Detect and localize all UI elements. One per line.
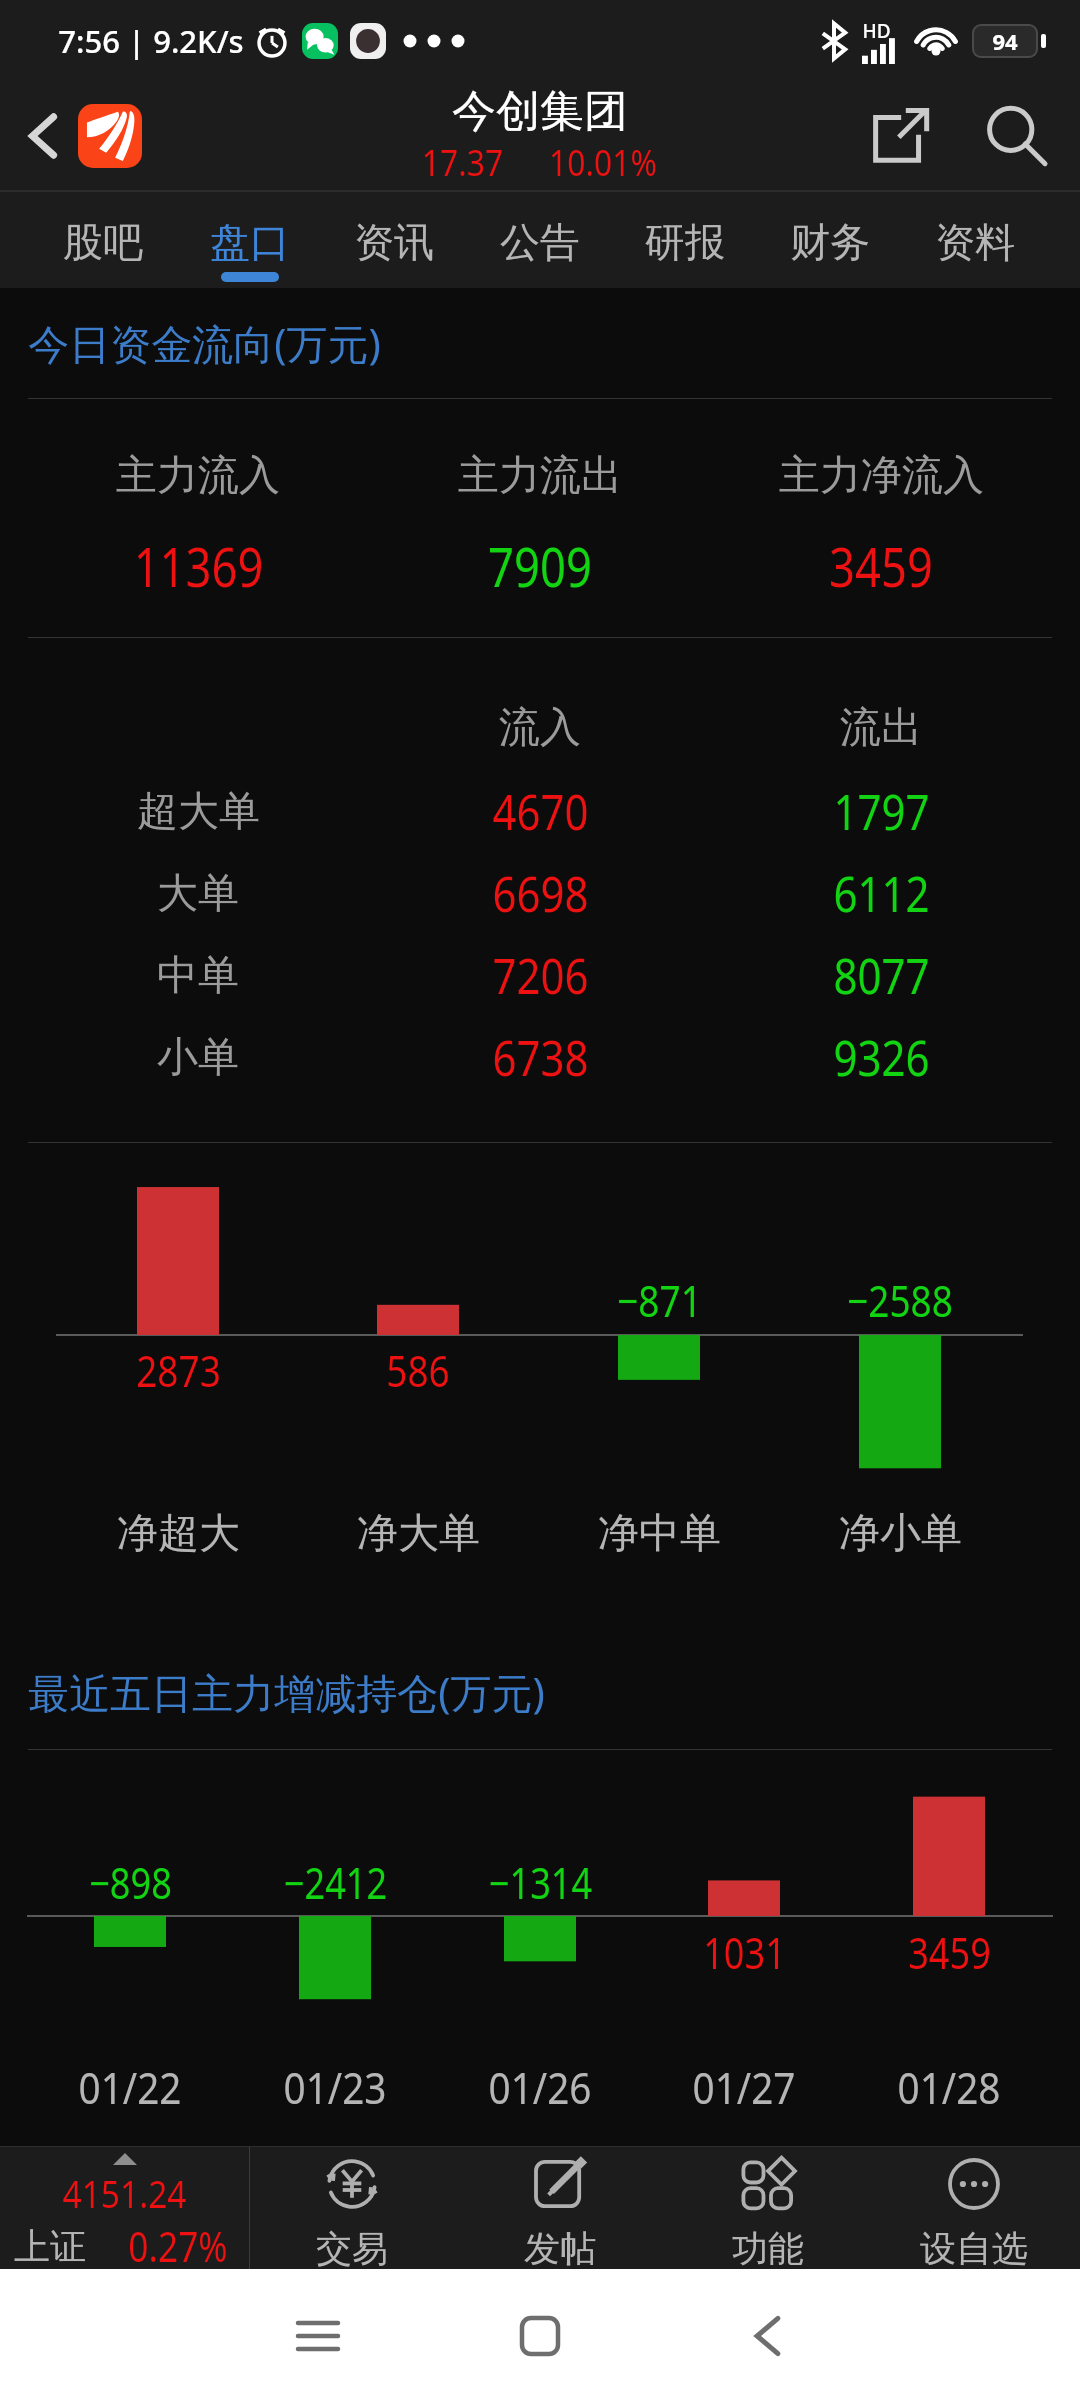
button[interactable]: 资料: [903, 192, 1047, 288]
staticText: 6112: [833, 859, 930, 927]
staticText: 8077: [833, 941, 930, 1009]
staticText: 公告: [500, 217, 580, 267]
staticText: 4670: [492, 777, 589, 845]
button[interactable]: 设自选: [884, 2146, 1064, 2269]
staticText: 01/28: [897, 2057, 1001, 2117]
staticText: 小单: [157, 1032, 239, 1084]
staticText: 0.27%: [128, 2218, 228, 2274]
staticText: 交易: [316, 2226, 388, 2271]
staticText: 6738: [492, 1023, 589, 1091]
staticText: −1314: [489, 1853, 592, 1912]
button[interactable]: 盘口: [178, 192, 322, 288]
staticText: 盘口: [210, 217, 290, 267]
staticText: 11369: [133, 529, 264, 603]
staticText: 中单: [157, 950, 239, 1002]
staticText: 超大单: [137, 786, 260, 838]
staticText: 股吧: [63, 217, 143, 267]
staticText: 4151.24: [62, 2166, 187, 2219]
button[interactable]: Share: [846, 82, 954, 190]
staticText: 最近五日主力增减持仓(万元): [28, 1664, 545, 1720]
staticText: 9326: [833, 1023, 930, 1091]
button[interactable]: 财务: [758, 192, 902, 288]
staticText: 今创集团: [452, 84, 628, 139]
staticText: 3459: [908, 1923, 991, 1982]
staticText: 主力流入: [116, 450, 280, 502]
staticText: 功能: [732, 2226, 804, 2271]
button[interactable]: 4151.24: [0, 2146, 249, 2269]
staticText: 94: [992, 26, 1018, 56]
staticText: 01/22: [78, 2057, 182, 2117]
button[interactable]: Home: [480, 2276, 600, 2396]
button[interactable]: Back: [707, 2276, 827, 2396]
staticText: 上证: [14, 2224, 86, 2269]
staticText: 17.37: [422, 136, 503, 186]
staticText: −898: [89, 1853, 172, 1912]
staticText: 6698: [492, 859, 589, 927]
staticText: 10.01%: [549, 136, 657, 186]
button[interactable]: East Money logo: [78, 104, 142, 168]
staticText: 01/27: [692, 2057, 796, 2117]
staticText: 设自选: [920, 2226, 1028, 2271]
staticText: 7:56 | 9.2K/s: [58, 20, 244, 62]
staticText: 大单: [157, 868, 239, 920]
staticText: 1797: [833, 777, 930, 845]
staticText: 流出: [840, 702, 922, 754]
button[interactable]: 资讯: [322, 192, 466, 288]
staticText: 7206: [492, 941, 589, 1009]
staticText: −2588: [847, 1270, 953, 1330]
button[interactable]: Recents: [258, 2276, 378, 2396]
staticText: 01/23: [283, 2057, 387, 2117]
staticText: 发帖: [524, 2226, 596, 2271]
staticText: −871: [617, 1270, 702, 1330]
staticText: 01/26: [488, 2057, 592, 2117]
staticText: 流入: [499, 702, 581, 754]
staticText: −2412: [284, 1853, 387, 1912]
staticText: 资讯: [354, 217, 434, 267]
staticText: 7909: [488, 529, 592, 603]
staticText: 主力净流入: [779, 450, 984, 502]
staticText: 净大单: [357, 1508, 480, 1560]
button[interactable]: 发帖: [470, 2146, 650, 2269]
staticText: 财务: [790, 217, 870, 267]
button[interactable]: 功能: [678, 2146, 858, 2269]
staticText: 净小单: [839, 1508, 962, 1560]
button[interactable]: Back: [0, 82, 88, 190]
staticText: 2873: [136, 1340, 221, 1400]
staticText: HD: [862, 18, 891, 44]
staticText: 主力流出: [458, 450, 622, 502]
button[interactable]: 公告: [468, 192, 612, 288]
staticText: 今日资金流向(万元): [28, 315, 381, 371]
button[interactable]: Search: [958, 82, 1074, 190]
staticText: 资料: [935, 217, 1015, 267]
staticText: 研报: [645, 217, 725, 267]
staticText: 净中单: [598, 1508, 721, 1560]
button[interactable]: 研报: [613, 192, 757, 288]
staticText: 586: [386, 1340, 450, 1400]
staticText: 净超大: [117, 1508, 240, 1560]
button[interactable]: 股吧: [31, 192, 175, 288]
button[interactable]: 交易: [262, 2146, 442, 2269]
staticText: 3459: [829, 529, 933, 603]
staticText: 1031: [703, 1923, 786, 1982]
